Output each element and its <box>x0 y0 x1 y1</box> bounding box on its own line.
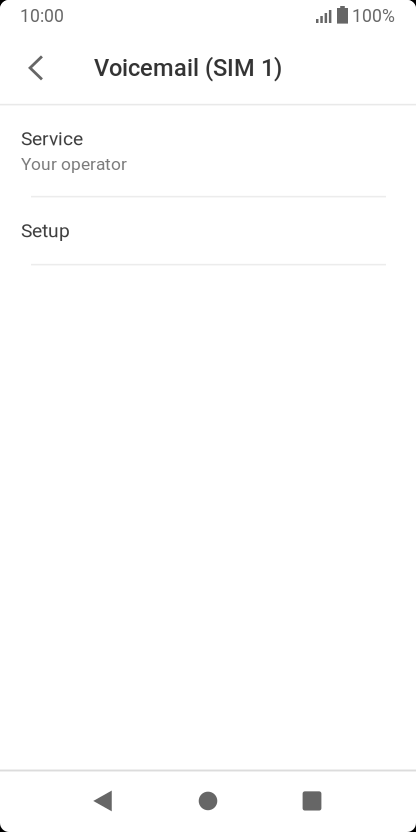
staticText: Setup <box>21 219 70 242</box>
button[interactable]: Setup <box>0 197 416 265</box>
staticText: 10:00 <box>20 6 64 26</box>
button[interactable]: Service <box>0 105 416 197</box>
staticText: 100% <box>352 6 395 26</box>
staticText: Your operator <box>21 154 127 174</box>
staticText: Voicemail (SIM 1) <box>94 54 282 82</box>
button[interactable]: System back <box>52 771 156 832</box>
button[interactable]: Home <box>156 771 260 832</box>
button[interactable]: Back <box>7 32 65 104</box>
button[interactable]: Recent apps <box>260 771 364 832</box>
staticText: Service <box>21 127 83 150</box>
